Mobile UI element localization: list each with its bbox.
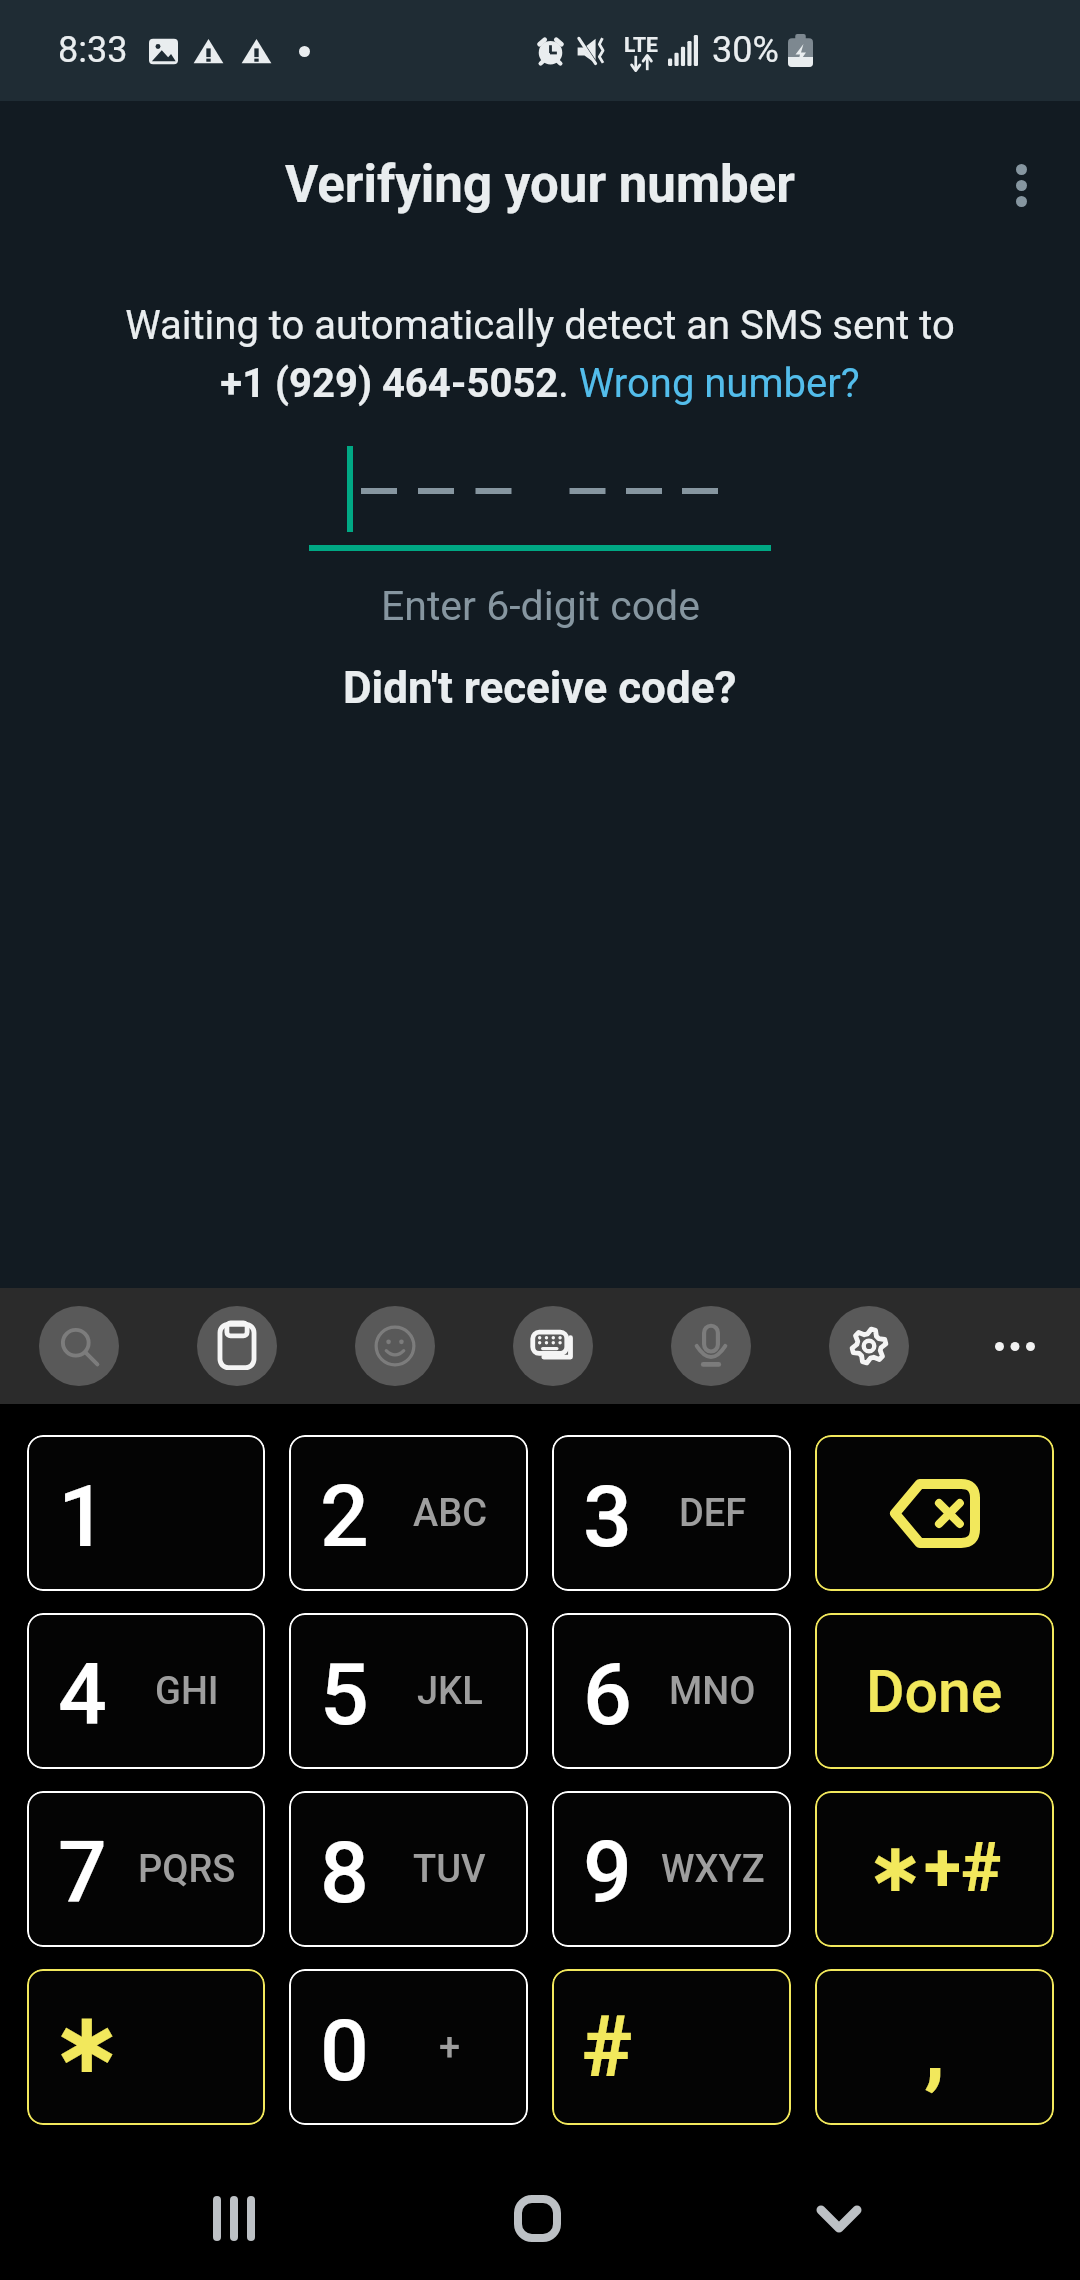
staticText: Waiting to automatically detect an SMS s… <box>125 302 955 349</box>
staticText: 5 <box>320 1644 369 1745</box>
button[interactable]: 6 <box>552 1613 791 1769</box>
staticText: Done <box>866 1657 1003 1726</box>
staticText: ∗ <box>51 1993 123 2092</box>
staticText: 1 <box>58 1466 107 1567</box>
staticText: # <box>582 1997 633 2097</box>
button[interactable]: More options <box>975 1306 1055 1386</box>
button[interactable]: 0 <box>289 1969 528 2125</box>
button[interactable]: Didn't receive code? <box>319 654 761 722</box>
button[interactable]: Home <box>477 2158 597 2278</box>
button[interactable]: 2 <box>289 1435 528 1591</box>
button[interactable]: 5 <box>289 1613 528 1769</box>
staticText: 3 <box>583 1466 632 1567</box>
button[interactable]: , <box>815 1969 1054 2125</box>
button[interactable]: Hide keyboard <box>779 2159 899 2279</box>
button[interactable]: 8 <box>289 1791 528 1947</box>
button[interactable]: More options <box>962 126 1080 244</box>
staticText: TUV <box>413 1847 486 1892</box>
staticText: 30% <box>712 29 779 71</box>
button[interactable]: ∗+# <box>815 1791 1054 1947</box>
staticText: Enter 6-digit code <box>381 582 700 630</box>
button[interactable]: 3 <box>552 1435 791 1591</box>
button[interactable]: Settings <box>829 1306 909 1386</box>
staticText: 2 <box>320 1466 369 1567</box>
button[interactable]: # <box>552 1969 791 2125</box>
staticText: JKL <box>417 1669 483 1714</box>
staticText: LTE <box>624 33 658 58</box>
staticText: GHI <box>155 1669 219 1714</box>
staticText: 7 <box>58 1822 107 1923</box>
button[interactable]: Recent apps <box>174 2158 294 2278</box>
button[interactable]: ∗ <box>27 1969 265 2125</box>
staticText: Verifying your number <box>285 155 795 215</box>
staticText: , <box>924 1998 946 2099</box>
button[interactable]: 7 <box>27 1791 265 1947</box>
button[interactable]: Clipboard <box>197 1306 277 1386</box>
staticText: 0 <box>320 2000 369 2101</box>
button[interactable]: Emoji <box>355 1306 435 1386</box>
staticText: +1 (929) 464-5052. Wrong number? <box>220 360 860 407</box>
staticText: 4 <box>58 1644 107 1745</box>
button[interactable]: Backspace <box>815 1435 1054 1591</box>
staticText: DEF <box>679 1491 747 1536</box>
staticText: 8:33 <box>58 29 128 71</box>
button[interactable]: 1 <box>27 1435 265 1591</box>
staticText: + <box>439 2025 461 2070</box>
staticText: ABC <box>413 1491 487 1536</box>
staticText: ∗+# <box>867 1828 1002 1908</box>
button[interactable]: Done <box>815 1613 1054 1769</box>
button[interactable]: 9 <box>552 1791 791 1947</box>
button[interactable]: 4 <box>27 1613 265 1769</box>
button[interactable]: Keyboard layouts <box>513 1306 593 1386</box>
staticText: Didn't receive code? <box>343 662 737 714</box>
staticText: MNO <box>669 1669 756 1714</box>
staticText: 8 <box>320 1822 369 1923</box>
staticText: PQRS <box>138 1847 236 1892</box>
staticText: 6 <box>583 1644 632 1745</box>
button[interactable]: Voice input <box>671 1306 751 1386</box>
button[interactable]: Search <box>39 1306 119 1386</box>
staticText: WXYZ <box>661 1847 765 1892</box>
staticText: 9 <box>583 1822 632 1923</box>
